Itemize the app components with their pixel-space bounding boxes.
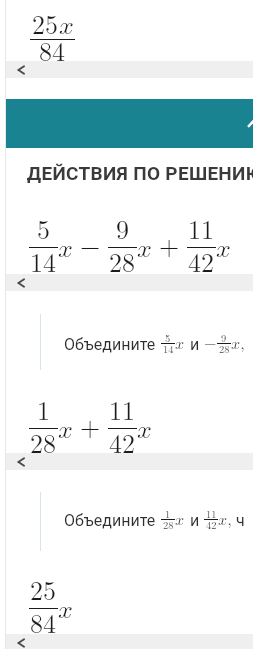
staticText: ч (236, 511, 245, 530)
staticText: 9 (116, 210, 130, 247)
staticText: 84 (30, 604, 57, 641)
staticText: 𝑥 (216, 236, 231, 262)
staticText: 𝑥 (175, 512, 185, 528)
staticText: 42 (206, 517, 217, 532)
staticText: + (80, 415, 101, 441)
staticText: 14 (163, 341, 174, 356)
staticText: 5 (37, 210, 51, 247)
staticText: 25 (30, 571, 57, 608)
staticText: 25 (32, 5, 59, 42)
staticText: + (159, 234, 180, 260)
staticText: 5 (165, 330, 171, 345)
staticText: 𝑥 (175, 336, 185, 352)
staticText: ДЕЙСТВИЯ ПО РЕШЕНИЮ (27, 162, 253, 184)
staticText: 42 (109, 424, 136, 461)
staticText: 28 (219, 341, 230, 356)
staticText: 𝑥 (58, 236, 73, 262)
staticText: и (190, 335, 200, 354)
staticText: 𝑥 (137, 417, 152, 443)
button[interactable]: Scroll expression left (6, 634, 253, 649)
button[interactable]: Scroll expression left (6, 453, 253, 470)
staticText: − (80, 234, 101, 260)
staticText: 𝑥, (218, 512, 232, 528)
staticText: Объедините (64, 335, 156, 354)
staticText: 𝑥 (59, 13, 74, 39)
staticText: 28 (163, 517, 174, 532)
staticText: 84 (39, 32, 66, 69)
staticText: 11 (188, 210, 215, 247)
staticText: 𝑥 (137, 236, 152, 262)
staticText: 11 (109, 391, 136, 428)
staticText: 14 (30, 243, 57, 280)
staticText: 1 (37, 391, 51, 428)
staticText: 9 (221, 330, 227, 345)
staticText: и (190, 511, 200, 530)
staticText: − (204, 336, 217, 352)
staticText: 11 (206, 506, 217, 521)
button[interactable]: Scroll expression left (6, 61, 253, 78)
button[interactable]: Scroll expression left (6, 274, 253, 291)
staticText: 42 (188, 243, 215, 280)
button[interactable]: Solution summary (6, 99, 253, 148)
staticText: 1 (165, 506, 171, 521)
staticText: 28 (30, 424, 57, 461)
staticText: 𝑥 (58, 417, 73, 443)
staticText: Объедините (64, 511, 156, 530)
staticText: 𝑥 (58, 597, 73, 623)
staticText: 𝑥, (231, 336, 245, 352)
staticText: 28 (109, 243, 136, 280)
